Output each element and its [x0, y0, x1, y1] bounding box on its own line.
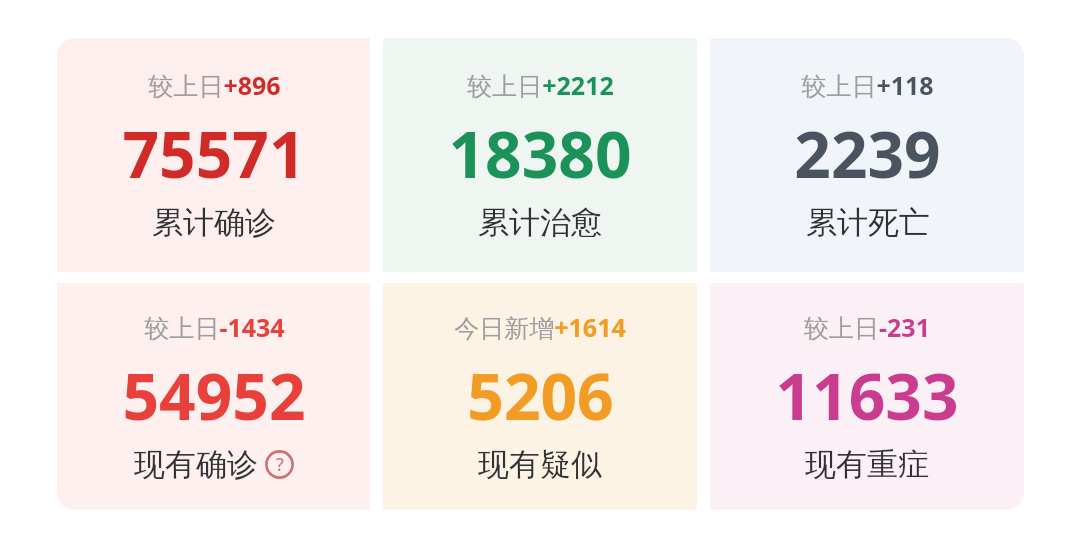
- staticText: 现有疑似: [478, 445, 602, 484]
- staticText: 54952: [122, 352, 306, 439]
- staticText: 较上日-231: [804, 310, 930, 344]
- staticText: ?: [276, 452, 284, 477]
- staticText: 累计确诊: [152, 203, 276, 242]
- staticText: 现有确诊: [134, 445, 258, 484]
- staticText: 现有重症: [805, 445, 929, 484]
- staticText: 11633: [775, 352, 959, 439]
- button[interactable]: 较上日-1434: [57, 283, 370, 510]
- staticText: 今日新增+1614: [454, 310, 626, 344]
- staticText: 累计死亡: [806, 203, 930, 242]
- button[interactable]: Help: [265, 450, 294, 479]
- staticText: 较上日+118: [801, 68, 934, 102]
- button[interactable]: 今日新增+1614: [383, 283, 697, 510]
- button[interactable]: 较上日+118: [710, 38, 1024, 272]
- button[interactable]: 较上日+2212: [383, 38, 697, 272]
- staticText: 18380: [448, 110, 632, 197]
- button[interactable]: 较上日-231: [710, 283, 1024, 510]
- staticText: 较上日+2212: [467, 68, 614, 102]
- staticText: 2239: [794, 110, 941, 197]
- staticText: 75571: [122, 110, 306, 197]
- button[interactable]: 较上日+896: [57, 38, 370, 272]
- staticText: 累计治愈: [478, 203, 602, 242]
- staticText: 5206: [467, 352, 614, 439]
- staticText: 较上日+896: [148, 68, 281, 102]
- staticText: 较上日-1434: [144, 310, 285, 344]
